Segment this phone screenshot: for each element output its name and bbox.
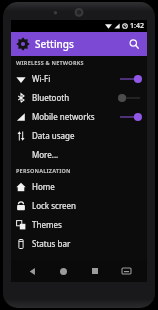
button[interactable]: Search [126, 36, 142, 52]
button[interactable]: Status bar [11, 234, 147, 253]
button[interactable]: Lock screen [11, 196, 147, 215]
staticText: WIRELESS & NETWORKS [16, 59, 84, 66]
button[interactable]: Bluetooth [11, 88, 147, 107]
button[interactable]: Home [11, 177, 147, 196]
staticText: PERSONALIZATION [16, 167, 71, 174]
button[interactable]: Bluetooth off [117, 91, 143, 105]
button[interactable]: Back [22, 261, 42, 281]
staticText: Bluetooth [32, 92, 70, 103]
button[interactable]: Themes [11, 215, 147, 234]
staticText: Status bar [32, 238, 71, 249]
staticText: Data usage [32, 130, 75, 141]
staticText: More... [32, 149, 59, 160]
button[interactable]: Data usage [11, 126, 147, 145]
staticText: 1:42 [130, 21, 144, 31]
staticText: Lock screen [32, 200, 77, 211]
staticText: Mobile networks [32, 111, 95, 122]
button[interactable]: Mobile networks [11, 107, 147, 126]
staticText: Themes [32, 219, 62, 230]
button[interactable]: Mobile networks on [117, 110, 143, 124]
staticText: Home [32, 181, 55, 192]
other: Settings [16, 37, 30, 51]
button[interactable]: Recent apps [85, 261, 105, 281]
button[interactable]: Wi-Fi on [117, 72, 143, 86]
button[interactable]: Wi-Fi [11, 69, 147, 88]
button[interactable]: More... [11, 145, 147, 164]
staticText: Settings [35, 37, 74, 51]
staticText: Wi-Fi [32, 73, 51, 84]
button[interactable]: Keyboard [116, 261, 136, 281]
button[interactable]: Home [53, 261, 73, 281]
